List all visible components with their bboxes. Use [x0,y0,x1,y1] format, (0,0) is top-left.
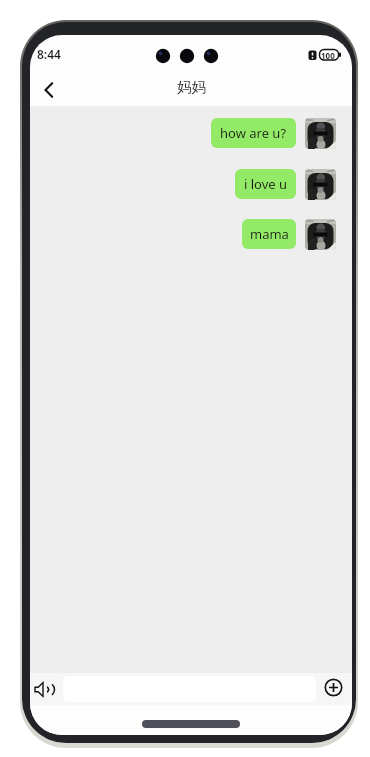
button[interactable] [324,678,343,697]
button[interactable]: i love u [235,169,296,199]
staticText: i love u [244,175,288,193]
button[interactable]: how are u? [211,118,296,148]
button[interactable] [305,169,336,200]
button[interactable]: mama [242,219,296,249]
staticText: mama [250,225,289,243]
staticText: how are u? [220,124,287,142]
button[interactable] [305,219,336,250]
button[interactable] [33,74,65,106]
staticText: 8:44 [37,46,61,62]
button[interactable] [305,118,336,149]
staticText: 妈妈 [177,78,206,96]
staticText: 100 [321,50,335,61]
